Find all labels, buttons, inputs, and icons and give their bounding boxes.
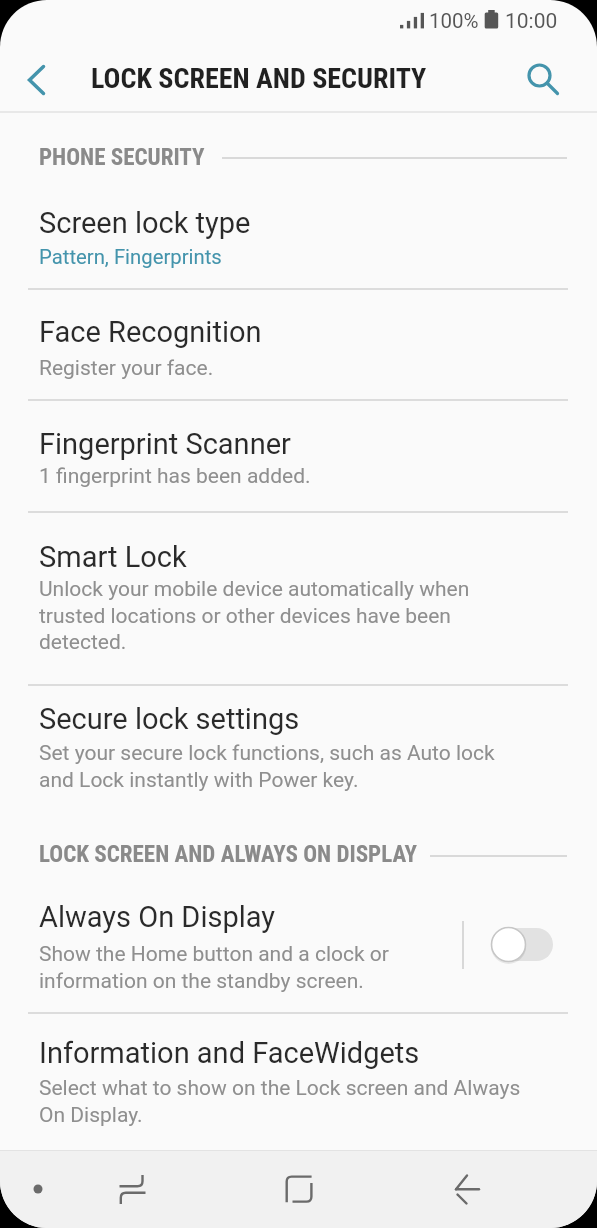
- button[interactable]: Fingerprint Scanner: [0, 401, 597, 511]
- button[interactable]: [488, 924, 558, 968]
- button[interactable]: [104, 1150, 160, 1206]
- staticText: Select what to show on the Lock screen a…: [39, 1076, 521, 1127]
- staticText: Secure lock settings: [39, 702, 300, 736]
- button[interactable]: Smart Lock: [0, 513, 597, 684]
- button[interactable]: Face Recognition: [0, 290, 597, 399]
- staticText: Smart Lock: [39, 540, 187, 574]
- staticText: 1 fingerprint has been added.: [39, 464, 311, 489]
- staticText: LOCK SCREEN AND ALWAYS ON DISPLAY: [39, 841, 417, 868]
- staticText: Unlock your mobile device automatically …: [39, 577, 470, 654]
- staticText: PHONE SECURITY: [39, 144, 205, 171]
- staticText: Information and FaceWidgets: [39, 1036, 420, 1070]
- staticText: Register your face.: [39, 356, 214, 381]
- button[interactable]: [20, 1171, 56, 1207]
- button[interactable]: [439, 1150, 495, 1206]
- staticText: Set your secure lock functions, such as …: [39, 741, 495, 792]
- staticText: Show the Home button and a clock or info…: [39, 942, 389, 993]
- button[interactable]: Information and FaceWidgets: [0, 1014, 597, 1150]
- button[interactable]: [512, 48, 568, 104]
- staticText: 100%: [429, 9, 479, 33]
- button[interactable]: Screen lock type: [0, 172, 597, 288]
- staticText: Always On Display: [39, 900, 276, 934]
- button[interactable]: Secure lock settings: [0, 686, 597, 815]
- staticText: 10:00: [505, 9, 558, 34]
- button[interactable]: [271, 1150, 327, 1206]
- staticText: Fingerprint Scanner: [39, 427, 291, 461]
- staticText: Pattern, Fingerprints: [39, 245, 222, 269]
- staticText: Screen lock type: [39, 206, 251, 240]
- button[interactable]: [8, 52, 64, 108]
- button[interactable]: Always On Display: [0, 880, 597, 1012]
- staticText: LOCK SCREEN AND SECURITY: [91, 62, 427, 95]
- staticText: Face Recognition: [39, 315, 262, 349]
